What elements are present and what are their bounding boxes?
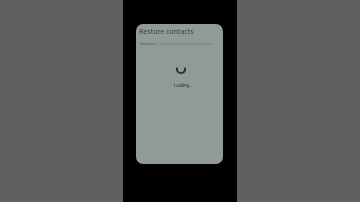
staticText: Restore contacts: [139, 27, 194, 37]
other: Loading indicator: [175, 63, 187, 75]
staticText: Loading…: [174, 82, 192, 89]
button[interactable]: Restore contacts: [136, 24, 223, 164]
staticText: jonathanmoore@gmail.com: [160, 41, 213, 47]
staticText: Backups •: [140, 41, 160, 47]
